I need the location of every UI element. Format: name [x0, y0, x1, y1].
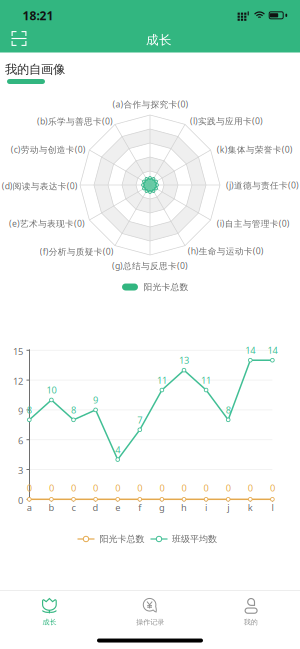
staticText: b: [48, 501, 54, 514]
staticText: 0: [137, 482, 142, 494]
staticText: (f)分析与质疑卡(0): [40, 245, 114, 257]
staticText: 12: [13, 375, 23, 387]
staticText: e: [115, 501, 120, 514]
staticText: 我的自画像: [5, 62, 65, 77]
staticText: 操作记录: [136, 618, 164, 627]
staticText: (e)艺术与表现卡(0): [9, 218, 85, 229]
staticText: (g)总结与反思卡(0): [112, 260, 188, 272]
staticText: 0: [18, 494, 23, 507]
staticText: 9: [18, 404, 23, 417]
staticText: f: [138, 501, 141, 514]
staticText: 8: [71, 403, 76, 416]
staticText: (c)劳动与创造卡(0): [11, 144, 86, 155]
staticText: 14: [245, 344, 255, 357]
staticText: 7: [137, 413, 142, 426]
staticText: i: [205, 501, 207, 514]
staticText: (d)阅读与表达卡(0): [2, 180, 78, 192]
staticText: (b)乐学与善思卡(0): [37, 115, 113, 127]
staticText: 15: [13, 345, 23, 358]
staticText: c: [71, 501, 75, 514]
staticText: (i)自主与管理卡(0): [217, 218, 290, 229]
staticText: 11: [201, 374, 211, 386]
button[interactable]: 扫一扫: [4, 24, 34, 52]
button[interactable]: 成长: [0, 592, 99, 632]
staticText: g: [159, 501, 165, 514]
staticText: 阳光卡总数: [143, 281, 188, 293]
staticText: 0: [181, 482, 186, 494]
staticText: 8: [226, 403, 231, 416]
staticText: 我的: [244, 618, 258, 627]
button[interactable]: 操作记录: [100, 592, 200, 632]
staticText: l: [271, 501, 273, 514]
staticText: 3: [18, 464, 23, 477]
staticText: 9: [93, 393, 98, 406]
staticText: 0: [115, 482, 120, 494]
staticText: d: [93, 501, 99, 514]
staticText: 18:21: [22, 7, 53, 24]
staticText: 8: [27, 403, 32, 416]
staticText: 阳光卡总数: [99, 533, 144, 545]
staticText: 0: [270, 482, 275, 494]
staticText: 13: [179, 354, 189, 366]
button[interactable]: 我的: [201, 592, 300, 632]
staticText: (h)生命与运动卡(0): [188, 245, 264, 257]
staticText: 成长: [146, 32, 172, 48]
staticText: 班级平均数: [172, 533, 217, 545]
staticText: 14: [267, 344, 277, 357]
staticText: j: [227, 501, 229, 514]
staticText: 10: [46, 384, 56, 396]
staticText: 6: [18, 434, 23, 447]
staticText: (l)实践与应用卡(0): [190, 115, 263, 127]
staticText: 0: [204, 482, 209, 494]
staticText: (j)道德与责任卡(0): [226, 179, 299, 191]
staticText: 0: [226, 482, 231, 494]
staticText: (k)集体与荣誉卡(0): [217, 144, 293, 155]
staticText: 0: [71, 482, 76, 494]
staticText: 11: [157, 374, 167, 386]
staticText: 0: [93, 482, 98, 494]
staticText: 4: [115, 443, 120, 456]
staticText: h: [181, 501, 187, 514]
staticText: k: [248, 501, 253, 514]
staticText: 0: [248, 482, 253, 494]
staticText: a: [27, 501, 32, 514]
staticText: 0: [49, 482, 54, 494]
staticText: 0: [159, 482, 164, 494]
staticText: 成长: [42, 618, 56, 627]
staticText: (a)合作与探究卡(0): [112, 98, 188, 110]
staticText: 0: [27, 482, 32, 494]
